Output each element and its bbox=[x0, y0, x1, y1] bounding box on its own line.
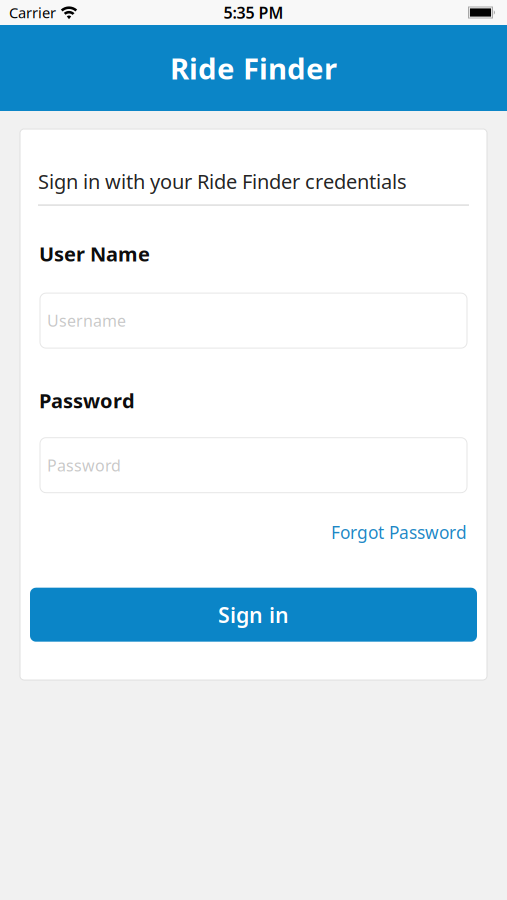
button[interactable]: Sign in bbox=[30, 588, 477, 642]
staticText: Password bbox=[47, 455, 121, 476]
staticText: Sign in bbox=[218, 600, 289, 629]
staticText: Password bbox=[39, 387, 135, 414]
staticText: Username bbox=[47, 310, 126, 331]
staticText: Carrier bbox=[9, 3, 56, 22]
button[interactable]: Forgot Password bbox=[331, 521, 467, 544]
staticText: 5:35 PM bbox=[223, 2, 283, 23]
staticText: Ride Finder bbox=[170, 48, 337, 87]
button[interactable]: Username bbox=[40, 293, 467, 348]
staticText: User Name bbox=[39, 241, 150, 267]
staticText: Forgot Password bbox=[331, 521, 467, 544]
button[interactable]: Password bbox=[40, 438, 467, 493]
staticText: Sign in with your Ride Finder credential… bbox=[38, 168, 407, 195]
